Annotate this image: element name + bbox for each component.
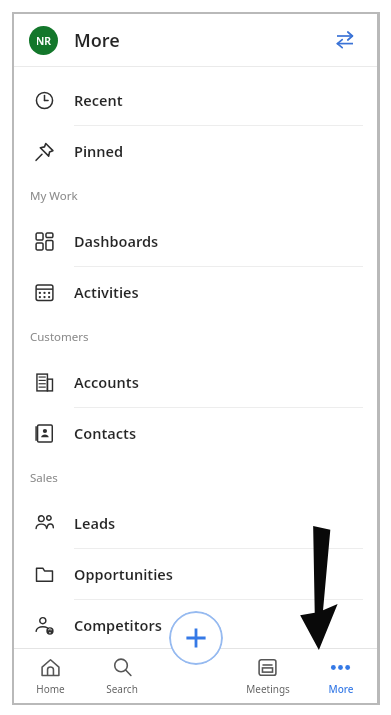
staticText: Customers: [30, 329, 89, 345]
button[interactable]: Leads: [14, 498, 377, 549]
staticText: Search: [106, 682, 138, 696]
button[interactable]: Competitors: [14, 600, 377, 650]
staticText: Quotes: [74, 690, 126, 703]
staticText: Sales: [30, 470, 58, 486]
staticText: NR: [36, 34, 51, 48]
staticText: Opportunities: [74, 564, 173, 584]
button[interactable]: Profile NR: [29, 26, 58, 55]
staticText: Pinned: [74, 141, 124, 161]
button[interactable]: Accounts: [14, 357, 377, 408]
button[interactable]: Recent: [14, 75, 377, 126]
button[interactable]: Pinned: [14, 126, 377, 176]
button[interactable]: Search: [86, 649, 158, 703]
staticText: More: [74, 28, 120, 53]
staticText: Contacts: [74, 423, 137, 443]
button[interactable]: Contacts: [14, 408, 377, 458]
staticText: Collateral: [30, 662, 82, 678]
button[interactable]: Dashboards: [14, 216, 377, 267]
staticText: Recent: [74, 90, 123, 110]
staticText: Meetings: [246, 682, 290, 696]
button[interactable]: Create: [169, 611, 223, 665]
staticText: Accounts: [74, 372, 139, 392]
staticText: Activities: [74, 282, 139, 302]
button[interactable]: Home: [14, 649, 86, 703]
button[interactable]: Meetings: [231, 649, 304, 703]
staticText: Dashboards: [74, 231, 159, 251]
button[interactable]: Switch app: [328, 23, 362, 57]
button[interactable]: Quotes: [14, 690, 377, 703]
staticText: Home: [36, 682, 65, 696]
button[interactable]: Opportunities: [14, 549, 377, 600]
staticText: Competitors: [74, 615, 162, 635]
button[interactable]: Activities: [14, 267, 377, 317]
staticText: Leads: [74, 513, 116, 533]
button[interactable]: More: [304, 649, 377, 703]
staticText: My Work: [30, 188, 78, 204]
staticText: More: [328, 682, 354, 696]
